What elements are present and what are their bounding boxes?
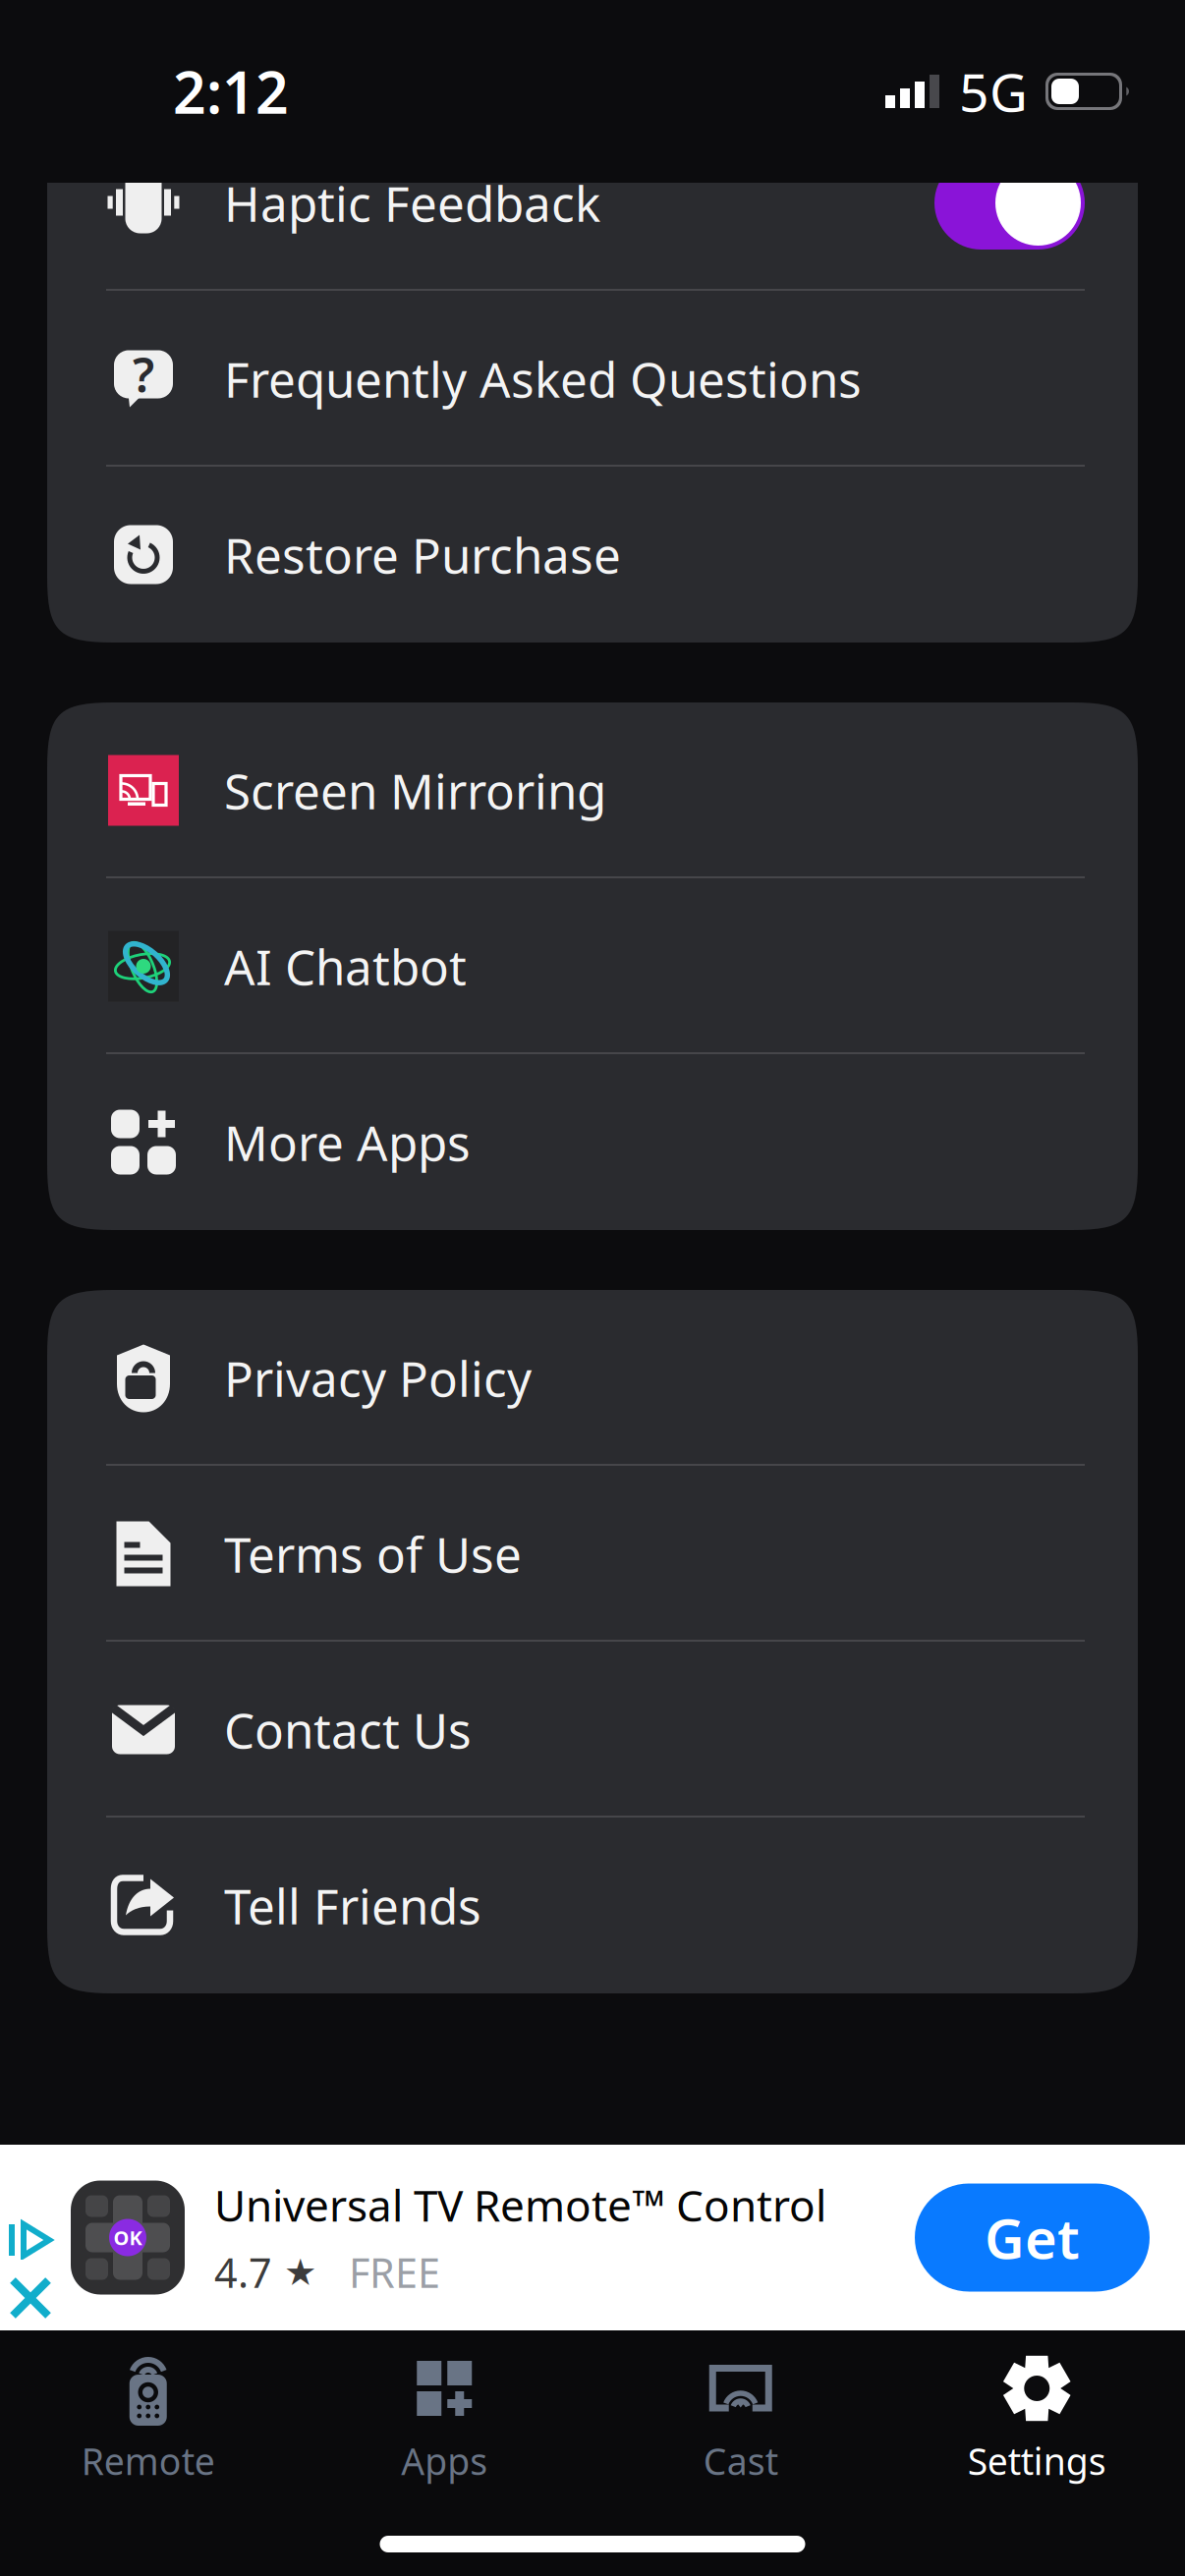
staticText: Settings: [968, 2436, 1106, 2485]
staticText: Remote: [81, 2436, 215, 2485]
staticText: Terms of Use: [224, 1522, 522, 1586]
button[interactable]: ?: [47, 291, 1138, 467]
button[interactable]: AI Chatbot: [47, 878, 1138, 1054]
button[interactable]: More Apps: [47, 1054, 1138, 1230]
staticText: ★: [272, 2251, 316, 2293]
button[interactable]: Haptic Feedback: [47, 115, 1138, 291]
staticText: More Apps: [224, 1110, 471, 1174]
button[interactable]: Apps: [296, 2350, 592, 2493]
staticText: Get: [985, 2201, 1080, 2274]
staticText: Tell Friends: [224, 1873, 481, 1938]
staticText: Haptic Feedback: [224, 171, 600, 235]
staticText: Screen Mirroring: [224, 758, 606, 823]
button[interactable]: Close ad: [10, 2277, 51, 2319]
button[interactable]: Screen Mirroring: [47, 702, 1138, 878]
staticText: Cast: [703, 2436, 778, 2485]
staticText: Privacy Policy: [224, 1346, 532, 1410]
button[interactable]: Privacy Policy: [47, 1290, 1138, 1466]
button[interactable]: Settings: [889, 2350, 1185, 2493]
button[interactable]: Tell Friends: [47, 1818, 1138, 1993]
staticText: AI Chatbot: [224, 934, 467, 998]
staticText: 2:12: [173, 53, 289, 130]
button[interactable]: Remote: [0, 2350, 296, 2493]
staticText: 4.7: [214, 2245, 272, 2299]
button[interactable]: Contact Us: [47, 1642, 1138, 1818]
staticText: ?: [133, 343, 154, 406]
button[interactable]: Cast: [592, 2350, 889, 2493]
staticText: 5G: [959, 57, 1028, 126]
button[interactable]: Get: [915, 2184, 1150, 2292]
button[interactable]: Restore Purchase: [47, 467, 1138, 643]
staticText: Universal TV Remote™ Control: [214, 2176, 826, 2233]
staticText: Frequently Asked Questions: [224, 347, 862, 411]
staticText: FREE: [316, 2245, 440, 2299]
button[interactable]: Ad Choices: [8, 2222, 53, 2260]
staticText: Contact Us: [224, 1697, 472, 1762]
staticText: Apps: [401, 2436, 488, 2485]
staticText: Restore Purchase: [224, 522, 621, 587]
button[interactable]: Terms of Use: [47, 1466, 1138, 1642]
staticText: OK: [113, 2224, 142, 2251]
